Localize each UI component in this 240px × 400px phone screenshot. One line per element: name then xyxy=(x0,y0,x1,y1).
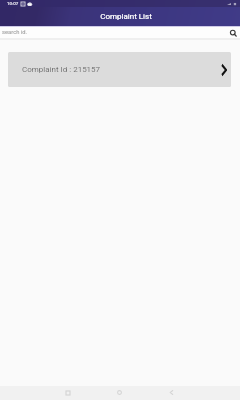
staticText: Complaint Id : 215157 xyxy=(22,65,101,74)
button[interactable]: Recents xyxy=(56,386,79,399)
button[interactable]: Home xyxy=(108,386,131,399)
staticText: Complaint List xyxy=(100,12,152,21)
staticText: search id. xyxy=(2,29,28,36)
button[interactable]: Back xyxy=(160,386,183,399)
button[interactable]: Search xyxy=(229,29,238,38)
button[interactable]: search id. xyxy=(0,27,240,38)
button[interactable]: Complaint Id : 215157 xyxy=(8,52,231,87)
staticText: 10:07 xyxy=(7,1,19,6)
